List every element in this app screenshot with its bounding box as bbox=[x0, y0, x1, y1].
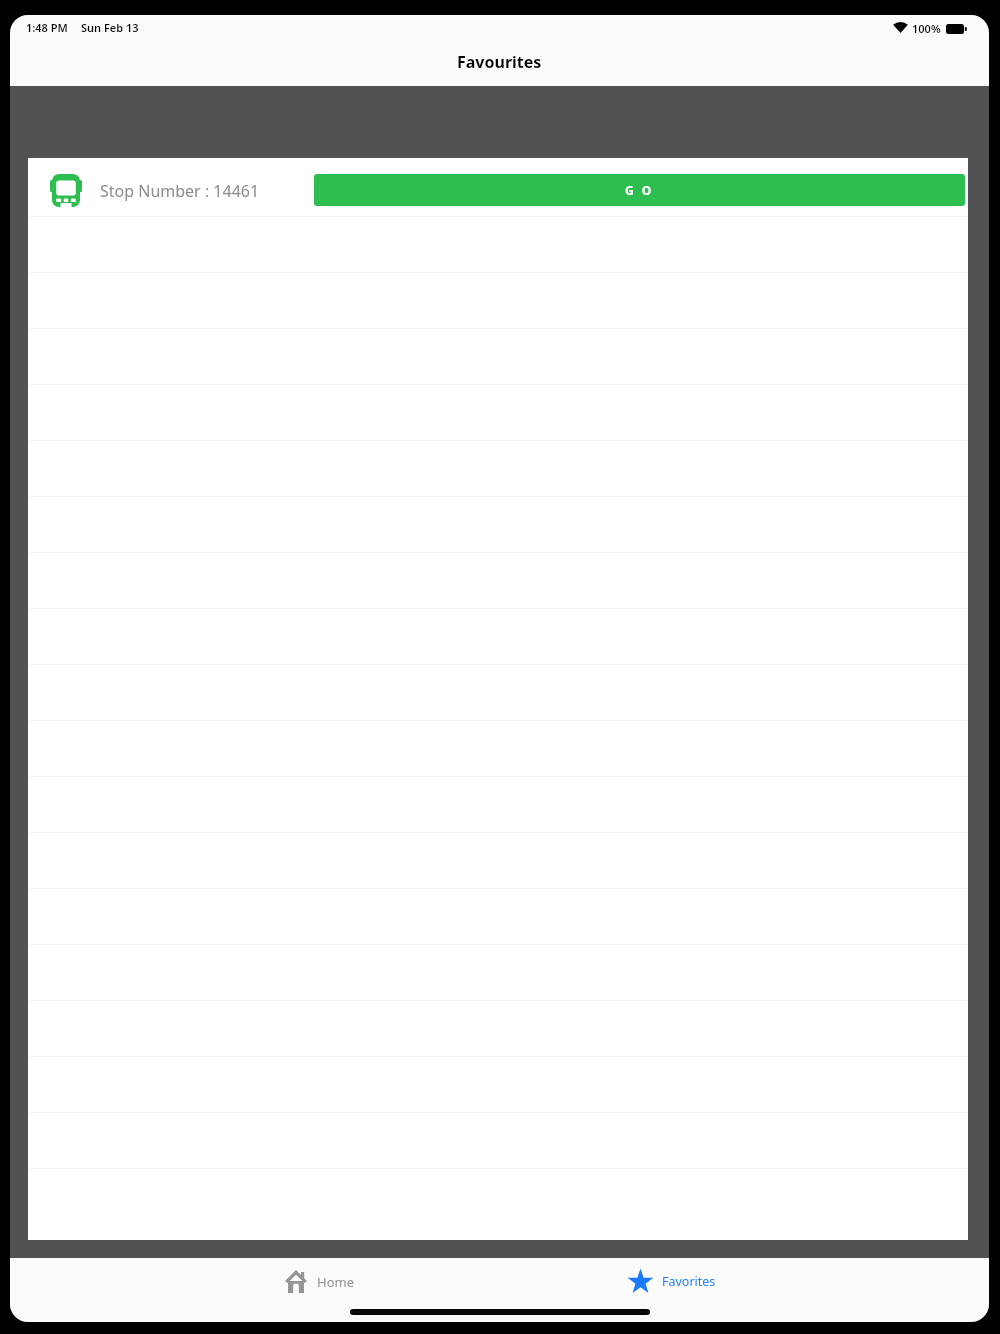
button[interactable]: Favorites bbox=[627, 1268, 716, 1294]
staticText: Sun Feb 13 bbox=[81, 20, 139, 35]
button[interactable]: G O bbox=[314, 174, 965, 206]
staticText: Stop Number : 14461 bbox=[100, 180, 260, 202]
staticText: 1:48 PM bbox=[26, 20, 68, 35]
staticText: G O bbox=[625, 182, 654, 198]
button[interactable]: Stop Number : 14461 bbox=[28, 158, 968, 216]
button[interactable]: Home bbox=[285, 1270, 354, 1293]
staticText: Home bbox=[317, 1273, 354, 1291]
staticText: Favorites bbox=[662, 1273, 716, 1290]
staticText: 100% bbox=[912, 21, 941, 36]
staticText: Favourites bbox=[457, 51, 542, 73]
